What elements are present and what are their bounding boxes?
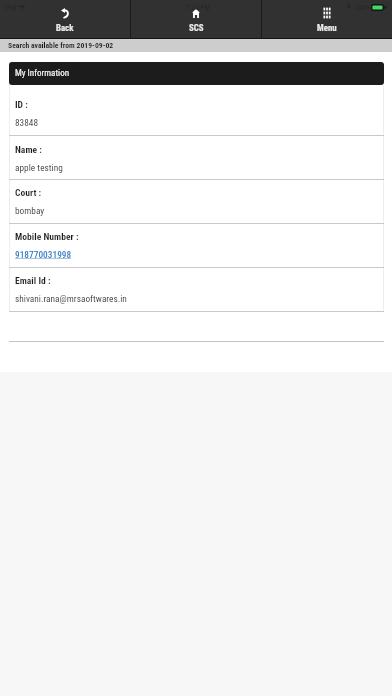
staticText: Search available from 2019-09-02 <box>8 41 114 50</box>
staticText: Back <box>56 23 74 33</box>
staticText: ID : <box>15 99 28 110</box>
button[interactable]: Menu <box>262 0 392 39</box>
staticText: iPad <box>4 3 17 11</box>
other: Menu <box>323 7 331 19</box>
staticText: My Information <box>15 68 70 79</box>
staticText: Court : <box>15 187 42 198</box>
other: Home <box>192 9 200 18</box>
staticText: bombay <box>15 205 45 216</box>
staticText: Email Id : <box>15 275 51 286</box>
other: Back <box>61 8 69 18</box>
staticText: 918770031998 <box>15 249 72 260</box>
button[interactable]: Court : <box>9 179 384 222</box>
button[interactable]: My Information <box>9 62 384 85</box>
staticText: apple testing <box>15 162 63 173</box>
button[interactable]: Back <box>0 0 130 39</box>
staticText: SCS <box>189 23 204 33</box>
staticText: Name : <box>15 144 42 155</box>
button[interactable]: Name : <box>9 135 384 179</box>
staticText: Menu <box>317 23 337 33</box>
staticText: shivani.rana@mrsaoftwares.in <box>15 293 127 304</box>
staticText: 83848 <box>15 117 39 128</box>
button[interactable]: ID : <box>9 84 384 135</box>
button[interactable]: Email Id : <box>9 267 384 310</box>
button[interactable]: Mobile Number : <box>9 223 384 267</box>
button[interactable]: Home <box>131 0 261 39</box>
staticText: 7:10 PM <box>186 3 211 12</box>
staticText: Mobile Number : <box>15 231 79 242</box>
